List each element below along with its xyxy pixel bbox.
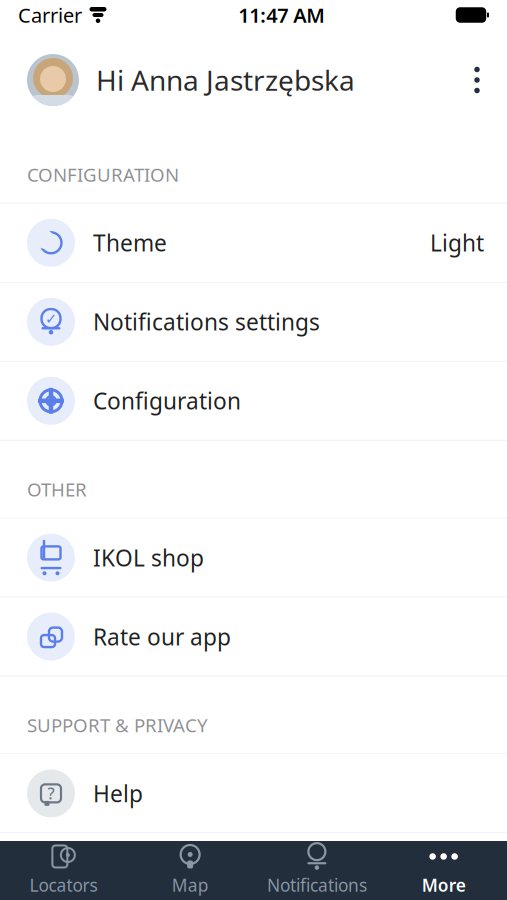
button[interactable]: Rate our app <box>0 598 507 676</box>
staticText: Carrier <box>18 2 82 28</box>
button[interactable]: Theme <box>0 204 507 282</box>
button[interactable]: Map <box>127 841 254 900</box>
button[interactable]: Hi Anna Jastrzębska <box>27 54 455 106</box>
button[interactable]: Notifications <box>253 841 380 900</box>
staticText: Privacy policy <box>93 857 239 887</box>
staticText: ? <box>47 783 54 804</box>
staticText: Configuration <box>93 386 241 416</box>
staticText: Help <box>93 778 143 808</box>
staticText: CONFIGURATION <box>27 162 179 187</box>
staticText: Rate our app <box>93 621 231 652</box>
button[interactable]: More <box>380 841 507 900</box>
staticText: Notifications settings <box>93 307 320 337</box>
staticText: ✓ <box>45 310 57 327</box>
staticText: Notifications <box>267 873 367 896</box>
staticText: Theme <box>93 228 167 258</box>
button[interactable]: IKOL shop <box>0 519 507 597</box>
button[interactable]: Configuration <box>0 362 507 440</box>
button[interactable]: Locators <box>0 841 127 900</box>
staticText: IKOL shop <box>93 542 204 573</box>
button[interactable]: Privacy policy <box>0 833 507 900</box>
staticText: 11:47 AM <box>238 2 325 28</box>
button[interactable]: ✓ <box>0 283 507 361</box>
staticText: More <box>422 873 466 896</box>
staticText: Locators <box>29 873 97 896</box>
button[interactable]: More options <box>455 54 499 106</box>
staticText: Light <box>430 228 484 258</box>
button[interactable]: ? <box>0 754 507 832</box>
staticText: Map <box>172 873 209 896</box>
staticText: SUPPORT & PRIVACY <box>27 713 208 737</box>
staticText: OTHER <box>27 477 87 502</box>
staticText: Hi Anna Jastrzębska <box>96 61 355 99</box>
